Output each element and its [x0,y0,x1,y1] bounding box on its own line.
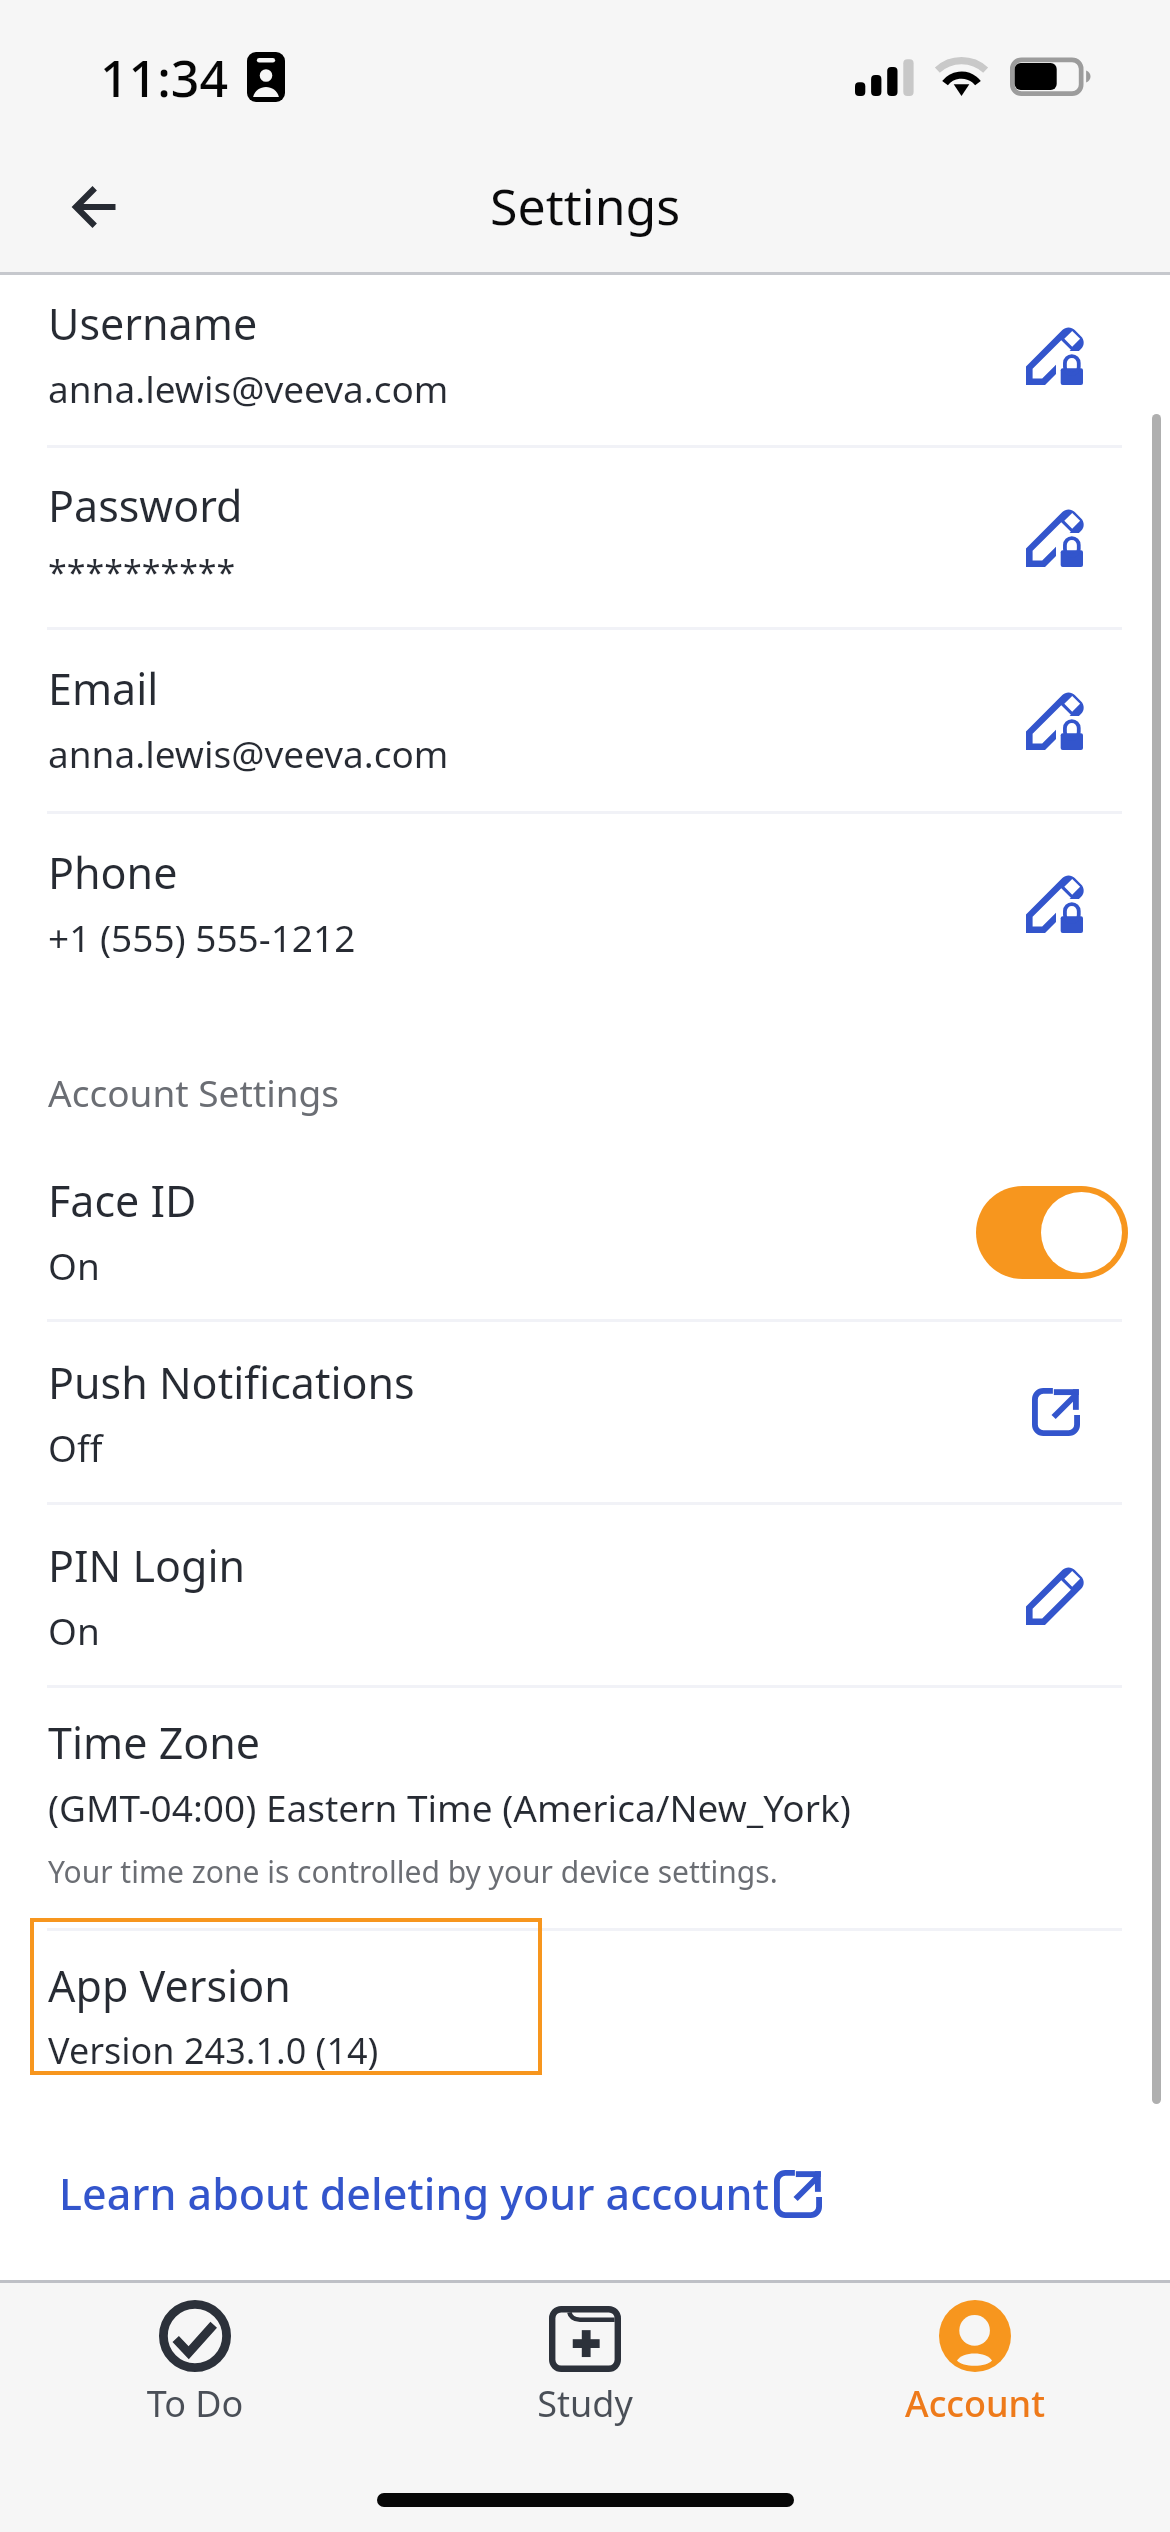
staticText: Email [48,659,159,718]
button[interactable]: Face ID on [976,1186,1128,1279]
staticText: Phone [48,843,178,902]
staticText: Off [48,1422,103,1472]
staticText: Account [855,2379,1095,2428]
button[interactable]: Edit [1013,860,1099,946]
button[interactable] [0,449,1170,628]
button[interactable] [0,1140,1170,1320]
button[interactable] [30,1918,542,2075]
staticText: PIN Login [48,1536,246,1595]
staticText: Username [48,294,258,353]
button[interactable] [0,1506,1170,1686]
button[interactable] [0,1323,1170,1503]
button[interactable] [0,1689,1170,1929]
staticText: anna.lewis@veeva.com [48,363,449,413]
staticText: (GMT-04:00) Eastern Time (America/New_Yo… [48,1782,851,1832]
button[interactable]: Back [52,165,136,249]
staticText: On [48,1605,100,1655]
staticText: Learn about deleting your account [59,2164,770,2223]
staticText: Time Zone [48,1713,261,1772]
button[interactable]: Edit PIN [1013,1552,1099,1638]
staticText: Settings [490,172,681,240]
staticText: To Do [75,2379,315,2428]
button[interactable] [0,815,1170,996]
staticText: Account Settings [48,1067,340,1117]
staticText: Study [465,2379,705,2428]
button[interactable] [0,631,1170,812]
staticText: +1 (555) 555-1212 [48,912,356,962]
staticText: Version 243.1.0 (14) [48,2026,379,2075]
button[interactable]: Open push notification settings [1013,1369,1099,1455]
button[interactable]: Study [465,2280,705,2440]
button[interactable]: Edit [1013,677,1099,763]
staticText: Face ID [48,1171,197,1230]
staticText: Your time zone is controlled by your dev… [48,1851,778,1892]
button[interactable]: Edit [1013,494,1099,580]
staticText: Push Notifications [48,1353,415,1412]
button[interactable]: Account [855,2280,1095,2440]
staticText: Password [48,476,243,535]
button[interactable]: Edit [1013,312,1099,398]
button[interactable] [56,2161,831,2257]
staticText: On [48,1240,100,1290]
staticText: ********** [48,549,236,595]
staticText: App Version [48,1956,291,2015]
staticText: anna.lewis@veeva.com [48,728,449,778]
staticText: 11:34 [100,44,228,112]
button[interactable]: To Do [75,2280,315,2440]
button[interactable] [0,271,1170,446]
